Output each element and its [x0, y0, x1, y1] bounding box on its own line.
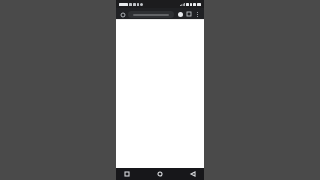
- button[interactable]: Downloads: [185, 10, 193, 18]
- button[interactable]: Home: [155, 169, 165, 179]
- button[interactable]: Home: [119, 11, 126, 18]
- button[interactable]: [128, 11, 174, 18]
- button[interactable]: Recents: [122, 169, 132, 179]
- button[interactable]: Back: [188, 169, 198, 179]
- button[interactable]: More options: [194, 11, 201, 18]
- button[interactable]: Tabs: [176, 10, 184, 18]
